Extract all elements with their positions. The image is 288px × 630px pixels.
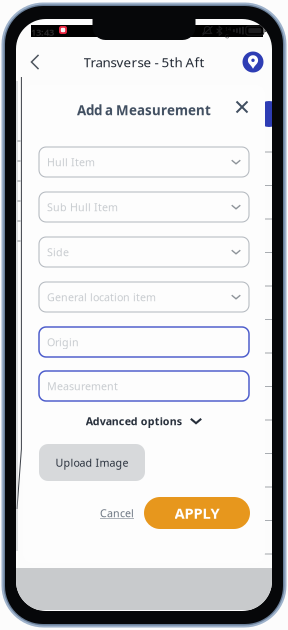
button[interactable]: Sub Hull Item [39, 192, 249, 222]
button[interactable]: Close [231, 96, 253, 118]
staticText: 14G [225, 26, 231, 40]
button[interactable]: Side [39, 237, 249, 267]
staticText: General location item [47, 290, 156, 304]
button[interactable]: APPLY [144, 497, 250, 529]
staticText: Measurement [47, 379, 118, 393]
button[interactable]: General location item [39, 282, 249, 312]
staticText: Sub Hull Item [47, 200, 118, 214]
button[interactable]: Hull Item [39, 147, 249, 177]
button[interactable]: Back [23, 49, 47, 75]
staticText: Origin [47, 335, 79, 349]
staticText: Add a Measurement [77, 101, 211, 119]
staticText: Advanced options [86, 414, 182, 428]
staticText: Transverse - 5th Aft [83, 53, 204, 71]
staticText: 13:43 [31, 26, 54, 38]
staticText: Cancel [100, 506, 134, 520]
button[interactable]: Measurement [39, 371, 249, 401]
button[interactable]: Upload Image [39, 444, 145, 481]
button[interactable]: Cancel [94, 502, 140, 524]
button[interactable]: Location [241, 49, 265, 75]
staticText: Side [47, 245, 69, 259]
button[interactable]: Advanced options [39, 410, 249, 432]
staticText: Upload Image [55, 455, 128, 470]
staticText: Hull Item [47, 155, 95, 169]
staticText: APPLY [174, 503, 219, 523]
button[interactable]: Origin [39, 327, 249, 357]
